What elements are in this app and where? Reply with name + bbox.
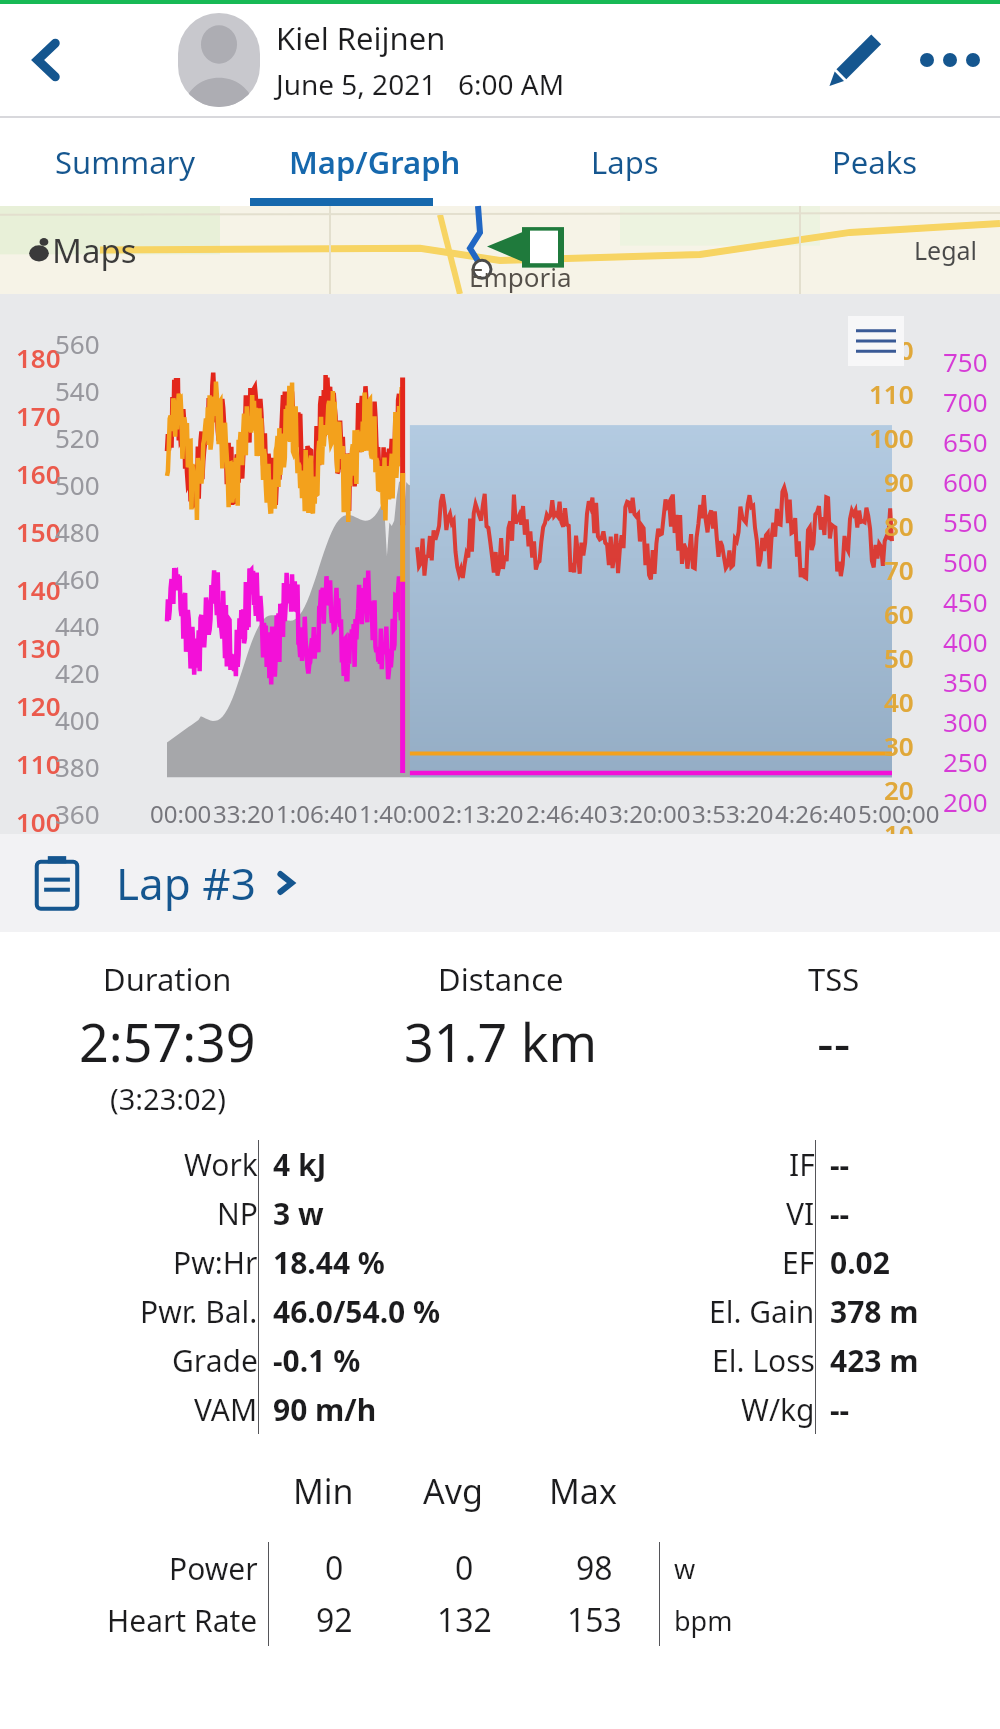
staticText: w <box>674 1550 696 1587</box>
staticText: -0.1 % <box>273 1340 361 1381</box>
staticText: 30 <box>884 728 914 763</box>
staticText: 1:40:00 <box>359 797 441 830</box>
staticText: W/kg <box>741 1389 815 1430</box>
staticText: 3:20:00 <box>609 797 691 830</box>
staticText: NP <box>217 1193 258 1234</box>
staticText: 00:00 <box>150 797 212 830</box>
staticText: 540 <box>55 373 100 408</box>
staticText: 90 m/h <box>273 1389 377 1430</box>
staticText: VI <box>786 1193 815 1234</box>
staticText: TSS <box>808 958 860 1000</box>
staticText: June 5, 2021 6:00 AM <box>276 65 565 103</box>
staticText: 380 <box>55 749 100 784</box>
staticText: 50 <box>884 640 914 675</box>
staticText: 20 <box>884 772 914 807</box>
staticText: 480 <box>55 514 100 549</box>
staticText: 10 <box>884 816 914 834</box>
staticText: 153 <box>567 1598 622 1642</box>
staticText: 40 <box>884 684 914 719</box>
staticText: Emporia <box>469 259 572 294</box>
button[interactable]: Back <box>0 4 92 116</box>
staticText: 70 <box>884 552 914 587</box>
button[interactable]: Laps <box>500 118 750 206</box>
staticText: 450 <box>943 584 988 619</box>
staticText: Summary <box>55 141 196 183</box>
staticText: Power <box>169 1548 258 1589</box>
button[interactable]: Peaks <box>750 118 1000 206</box>
staticText: 1:06:40 <box>276 797 358 830</box>
staticText: 98 <box>576 1546 613 1590</box>
button[interactable]: More options <box>900 4 1000 116</box>
staticText: 520 <box>55 420 100 455</box>
staticText: 100 <box>16 804 61 834</box>
staticText: 150 <box>16 514 61 549</box>
staticText: 460 <box>55 561 100 596</box>
staticText: 33:20 <box>213 797 275 830</box>
staticText: 378 m <box>830 1291 919 1332</box>
staticText: 46.0/54.0 % <box>273 1291 441 1332</box>
staticText: 120 <box>869 332 914 367</box>
staticText: 140 <box>16 572 61 607</box>
staticText: 650 <box>943 424 988 459</box>
staticText: Legal <box>914 233 978 267</box>
staticText: 300 <box>943 704 988 739</box>
staticText: Max <box>549 1468 617 1514</box>
staticText: Kiel Reijnen <box>276 17 446 59</box>
staticText: 440 <box>55 608 100 643</box>
staticText: 130 <box>16 630 61 665</box>
staticText: 92 <box>316 1598 353 1642</box>
staticText: Duration <box>103 958 232 1000</box>
staticText: 2:13:20 <box>442 797 524 830</box>
staticText: 600 <box>943 464 988 499</box>
staticText: 423 m <box>830 1340 919 1381</box>
staticText: Pwr. Bal. <box>140 1291 258 1332</box>
staticText: 3:53:20 <box>692 797 774 830</box>
button[interactable]: Lap #3 <box>0 834 1000 932</box>
staticText: 120 <box>16 688 61 723</box>
button[interactable]: Map/Graph <box>250 118 500 206</box>
staticText: 4 kJ <box>273 1144 327 1185</box>
staticText: 90 <box>884 464 914 499</box>
staticText: Map/Graph <box>289 141 461 183</box>
staticText: 3 w <box>273 1193 324 1234</box>
staticText: 160 <box>16 456 61 491</box>
staticText: Avg <box>423 1468 483 1514</box>
staticText: 31.7 km <box>404 1006 598 1077</box>
staticText: Grade <box>172 1340 258 1381</box>
staticText: 0.02 <box>830 1242 890 1283</box>
staticText: 80 <box>884 508 914 543</box>
staticText: -- <box>817 1006 851 1077</box>
staticText: 60 <box>884 596 914 631</box>
staticText: 560 <box>55 326 100 361</box>
staticText: VAM <box>194 1389 258 1430</box>
staticText: El. Gain <box>709 1291 815 1332</box>
staticText: 180 <box>16 340 61 375</box>
staticText: El. Loss <box>712 1340 815 1381</box>
staticText: 2:46:40 <box>526 797 608 830</box>
button[interactable]: Edit <box>810 4 900 116</box>
staticText: 200 <box>943 784 988 819</box>
staticText: 400 <box>943 624 988 659</box>
staticText: 420 <box>55 655 100 690</box>
staticText: 110 <box>16 746 61 781</box>
staticText: Peaks <box>832 141 918 183</box>
staticText: Lap #3 <box>116 853 256 913</box>
staticText: 18.44 % <box>273 1242 385 1283</box>
staticText: Maps <box>52 228 137 273</box>
staticText: Distance <box>438 958 564 1000</box>
button[interactable]: Chart options <box>848 316 904 366</box>
staticText: 500 <box>943 544 988 579</box>
staticText: 250 <box>943 744 988 779</box>
staticText: -- <box>830 1389 850 1430</box>
button[interactable]: Summary <box>0 118 250 206</box>
staticText: IF <box>789 1144 815 1185</box>
staticText: -- <box>830 1144 850 1185</box>
staticText: Laps <box>591 141 659 183</box>
staticText: 750 <box>943 344 988 379</box>
staticText: 4:26:40 <box>775 797 857 830</box>
staticText: 2:57:39 <box>79 1006 256 1077</box>
staticText: Min <box>293 1468 354 1514</box>
staticText: 500 <box>55 467 100 502</box>
staticText: 170 <box>16 398 61 433</box>
